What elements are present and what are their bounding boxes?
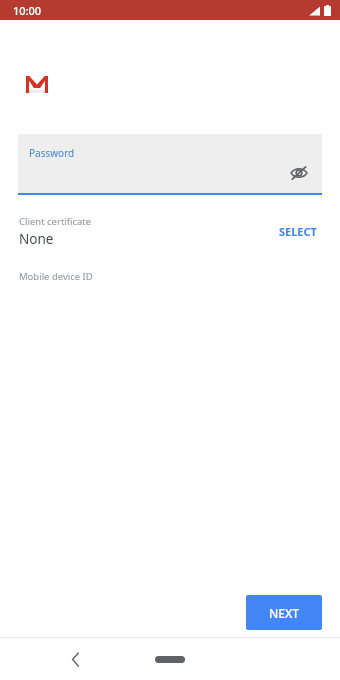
staticText: Mobile device ID bbox=[19, 270, 93, 283]
staticText: 10:00 bbox=[13, 3, 42, 18]
button[interactable]: Show password bbox=[285, 159, 313, 187]
button[interactable]: Home bbox=[143, 646, 197, 672]
button[interactable]: SELECT bbox=[275, 218, 321, 245]
staticText: Client certificate bbox=[19, 215, 92, 228]
button[interactable]: Mobile device ID bbox=[0, 270, 340, 283]
staticText: NEXT bbox=[269, 605, 300, 621]
button[interactable]: Password bbox=[18, 134, 322, 195]
staticText: SELECT bbox=[279, 224, 317, 239]
button[interactable]: NEXT bbox=[246, 595, 322, 630]
staticText: None bbox=[19, 230, 54, 248]
button[interactable]: Back bbox=[60, 644, 90, 674]
staticText: Password bbox=[29, 146, 75, 160]
